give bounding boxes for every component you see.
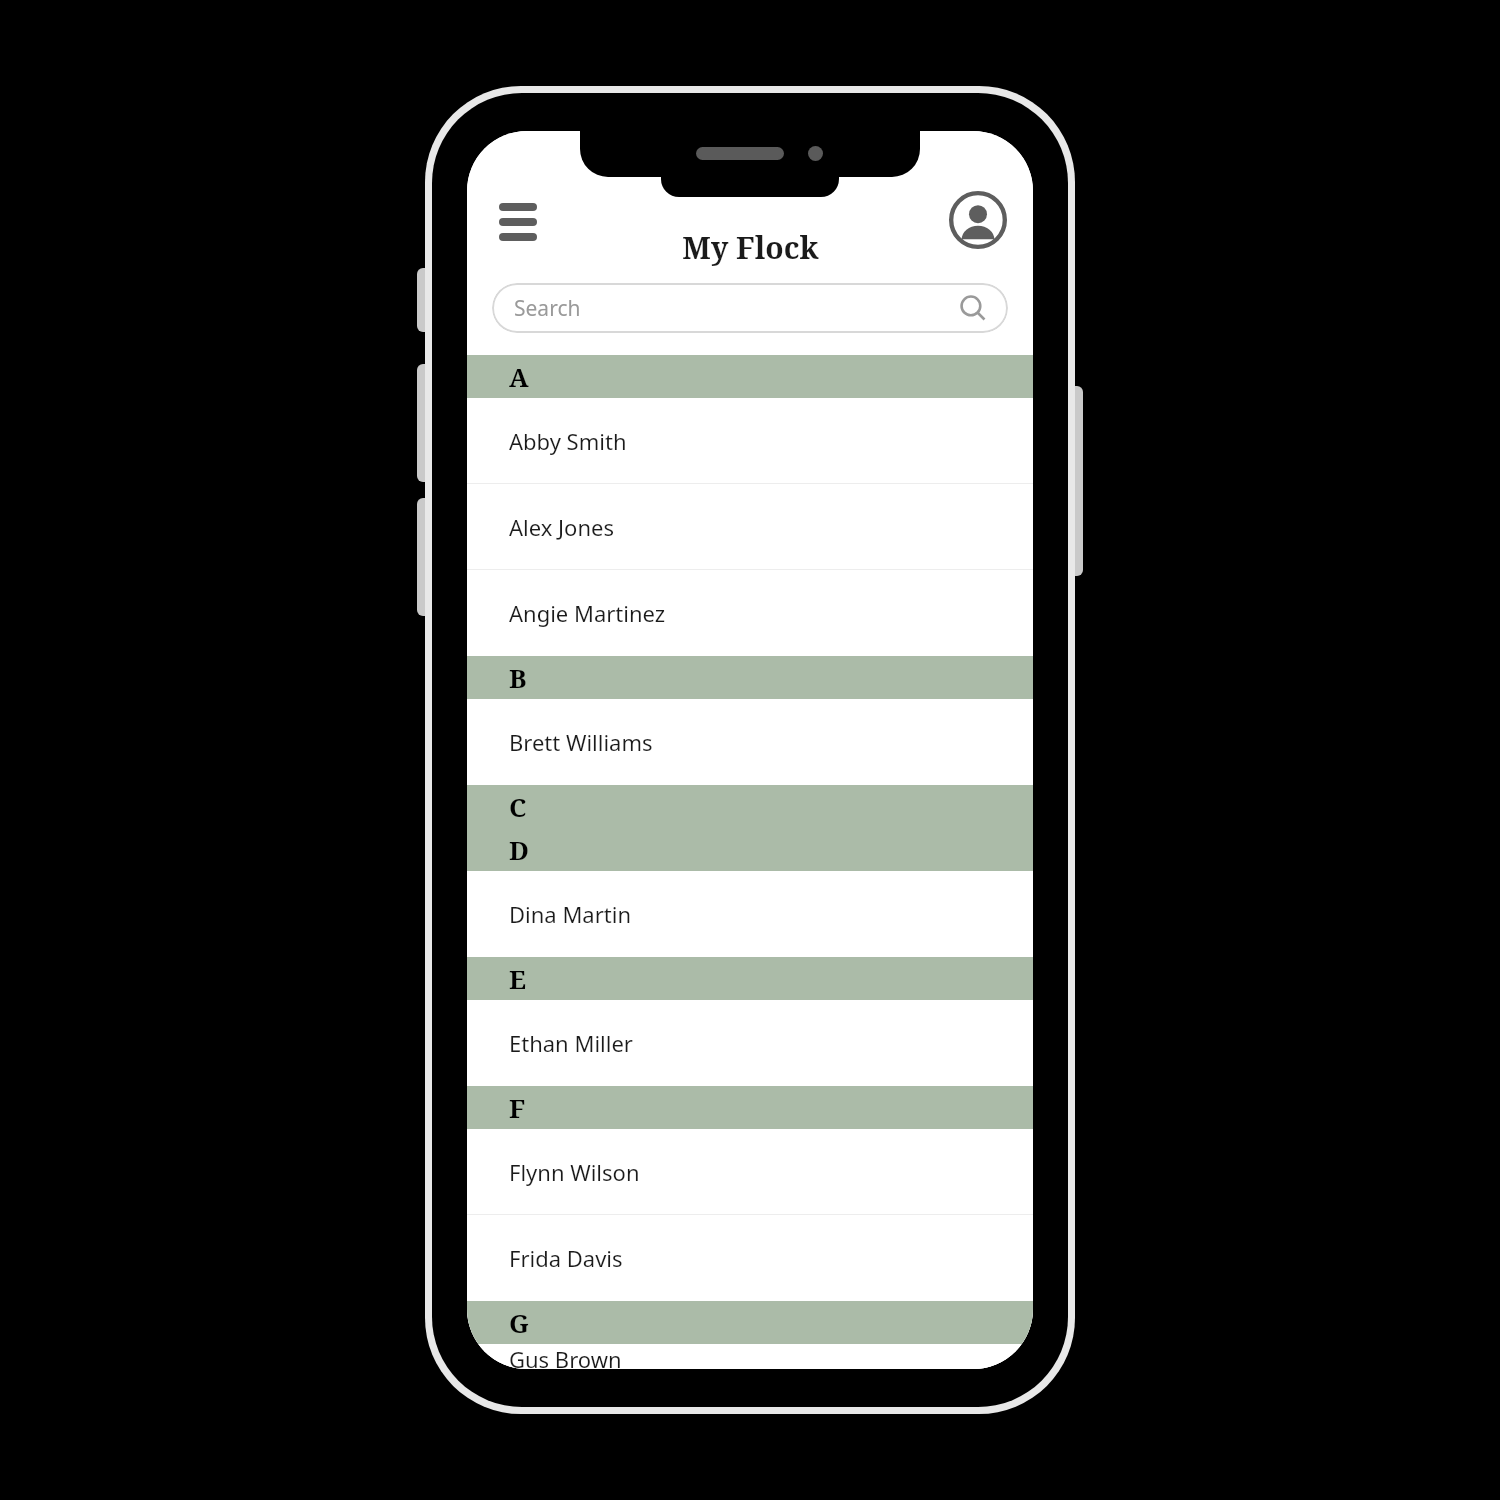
staticText: Gus Brown <box>509 1344 622 1369</box>
button[interactable]: Profile <box>947 189 1009 251</box>
button[interactable]: E <box>467 957 1033 1000</box>
button[interactable]: Frida Davis <box>467 1215 1033 1301</box>
staticText: C <box>509 789 527 824</box>
button[interactable]: Gus Brown <box>467 1344 1033 1369</box>
staticText: Brett Williams <box>509 727 653 757</box>
button[interactable]: Brett Williams <box>467 699 1033 785</box>
staticText: Abby Smith <box>509 426 627 456</box>
staticText: Search <box>514 294 581 323</box>
button[interactable]: Search <box>492 283 1008 333</box>
staticText: Alex Jones <box>509 512 614 542</box>
staticText: A <box>509 359 529 394</box>
button[interactable]: Flynn Wilson <box>467 1129 1033 1215</box>
button[interactable]: G <box>467 1301 1033 1344</box>
button[interactable]: D <box>467 828 1033 871</box>
button[interactable]: Alex Jones <box>467 484 1033 570</box>
staticText: Frida Davis <box>509 1243 623 1273</box>
button[interactable]: Dina Martin <box>467 871 1033 957</box>
staticText: B <box>509 660 527 695</box>
button[interactable]: Menu <box>491 195 545 249</box>
button[interactable]: F <box>467 1086 1033 1129</box>
button[interactable]: Ethan Miller <box>467 1000 1033 1086</box>
staticText: Dina Martin <box>509 899 631 929</box>
staticText: E <box>509 961 526 996</box>
staticText: My Flock <box>682 227 819 268</box>
button[interactable]: Abby Smith <box>467 398 1033 484</box>
staticText: Ethan Miller <box>509 1028 633 1058</box>
staticText: G <box>509 1305 530 1340</box>
button[interactable]: C <box>467 785 1033 828</box>
staticText: Flynn Wilson <box>509 1157 640 1187</box>
staticText: F <box>509 1090 526 1125</box>
staticText: Angie Martinez <box>509 598 666 628</box>
button[interactable]: B <box>467 656 1033 699</box>
staticText: D <box>509 832 529 867</box>
button[interactable]: A <box>467 355 1033 398</box>
button[interactable]: Angie Martinez <box>467 570 1033 656</box>
